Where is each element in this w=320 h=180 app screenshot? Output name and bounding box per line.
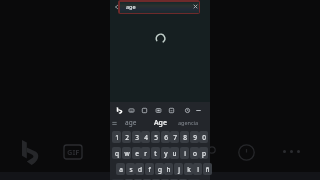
button[interactable]: q	[112, 147, 121, 159]
button[interactable]: o	[190, 147, 199, 159]
button[interactable]: age	[118, 116, 143, 129]
button[interactable]: Stickers	[139, 105, 149, 115]
button[interactable]: d	[135, 163, 144, 175]
staticText: a	[119, 165, 123, 174]
button[interactable]: 1	[112, 131, 121, 143]
staticText: g	[158, 165, 162, 174]
button[interactable]: Expand suggestions	[112, 121, 117, 126]
button[interactable]: 9	[190, 131, 199, 143]
button[interactable]: l	[193, 163, 202, 175]
button[interactable]: t	[151, 147, 160, 159]
staticText: e	[135, 149, 139, 158]
staticText: p	[202, 149, 206, 158]
button[interactable]: 7	[170, 131, 179, 143]
staticText: l	[197, 165, 199, 174]
button[interactable]: ñ	[203, 163, 212, 175]
button[interactable]: 3	[132, 131, 141, 143]
button[interactable]: u	[170, 147, 179, 159]
button[interactable]: y	[161, 147, 170, 159]
button[interactable]: g	[155, 163, 164, 175]
button[interactable]: h	[164, 163, 173, 175]
button[interactable]: f	[145, 163, 154, 175]
staticText: 1	[115, 133, 119, 142]
button[interactable]: Clipboard	[126, 105, 136, 115]
staticText: ñ	[205, 165, 210, 174]
button[interactable]: age	[118, 0, 200, 14]
staticText: q	[115, 149, 119, 158]
staticText: w	[124, 149, 130, 158]
staticText: i	[184, 149, 186, 158]
button[interactable]: GIF	[153, 105, 163, 115]
button[interactable]: s	[126, 163, 135, 175]
staticText: 9	[193, 133, 197, 142]
button[interactable]: w	[122, 147, 131, 159]
button[interactable]: r	[141, 147, 150, 159]
button[interactable]: Back	[113, 3, 121, 11]
button[interactable]: 0	[199, 131, 208, 143]
button[interactable]: e	[132, 147, 141, 159]
staticText: 3	[135, 133, 139, 142]
button[interactable]: i	[180, 147, 189, 159]
staticText: 5	[154, 133, 158, 142]
staticText: 7	[173, 133, 177, 142]
staticText: s	[129, 165, 133, 174]
button[interactable]: Age	[148, 116, 173, 129]
button[interactable]: 6	[161, 131, 170, 143]
staticText: h	[166, 165, 171, 174]
button[interactable]: Recent	[182, 105, 192, 115]
button[interactable]: 8	[180, 131, 189, 143]
staticText: r	[144, 149, 147, 158]
staticText: 2	[125, 133, 129, 142]
staticText: age	[126, 3, 136, 10]
staticText: j	[178, 165, 180, 174]
staticText: age	[125, 118, 137, 127]
staticText: u	[172, 149, 177, 158]
staticText: f	[148, 165, 151, 174]
staticText: d	[138, 165, 142, 174]
staticText: Age	[154, 118, 167, 128]
staticText: GIF	[67, 147, 80, 157]
staticText: 4	[144, 133, 148, 142]
button[interactable]: 5	[151, 131, 160, 143]
button[interactable]: 2	[122, 131, 131, 143]
staticText: 0	[202, 133, 206, 142]
staticText: o	[193, 149, 197, 158]
button[interactable]: More options	[193, 105, 203, 115]
staticText: y	[164, 149, 168, 158]
button[interactable]: agencia	[176, 116, 201, 129]
button[interactable]: k	[184, 163, 193, 175]
staticText: k	[187, 165, 191, 174]
staticText: 6	[164, 133, 168, 142]
staticText: t	[154, 149, 157, 158]
button[interactable]: Translate	[166, 105, 176, 115]
button[interactable]: a	[116, 163, 125, 175]
button[interactable]: p	[199, 147, 208, 159]
staticText: agencia	[178, 119, 199, 126]
button[interactable]: 4	[141, 131, 150, 143]
button[interactable]: Bing search	[114, 105, 124, 115]
button[interactable]: Clear	[193, 4, 198, 9]
staticText: 8	[183, 133, 187, 142]
button[interactable]: j	[174, 163, 183, 175]
